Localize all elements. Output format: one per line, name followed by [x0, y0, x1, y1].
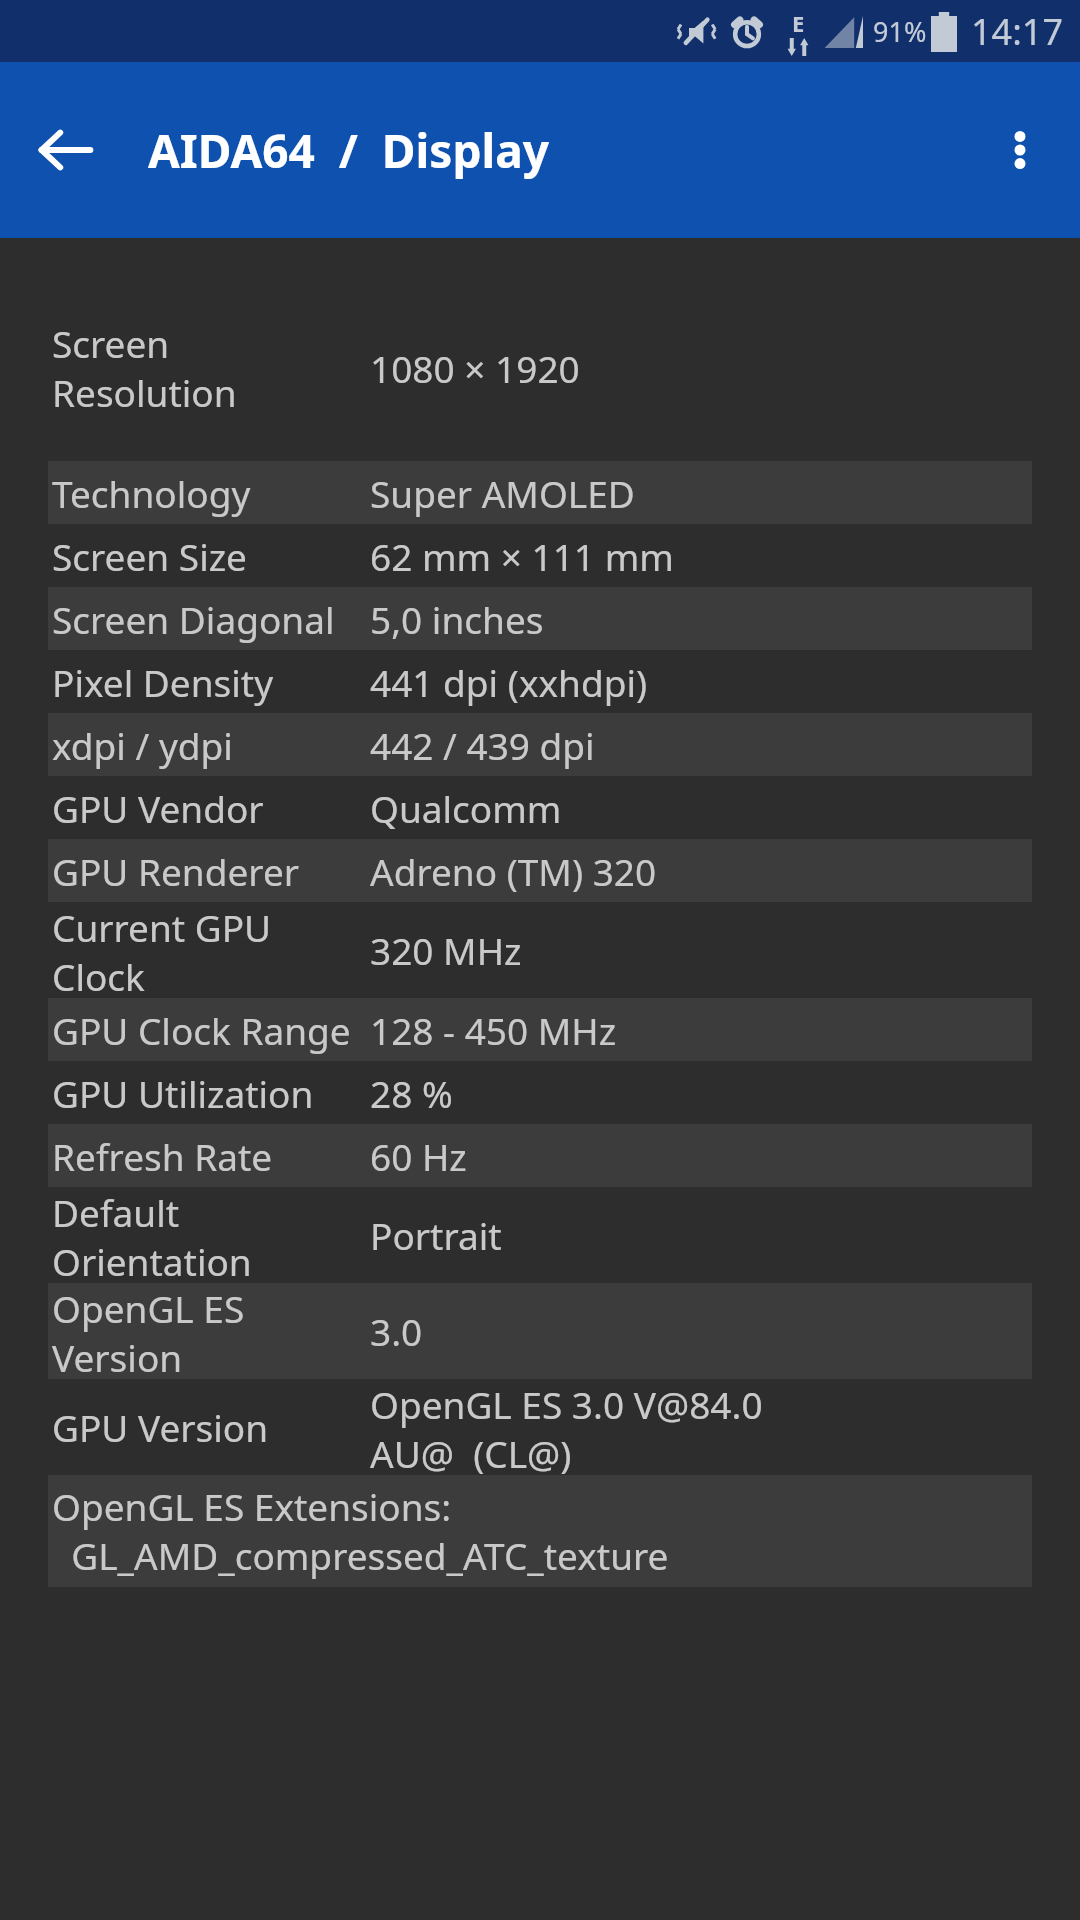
staticText: Portrait: [370, 1210, 502, 1260]
staticText: GPU Utilization: [52, 1068, 370, 1118]
staticText: AIDA64 / Display: [148, 119, 549, 182]
button[interactable]: xdpi / ydpi: [48, 713, 1032, 776]
staticText: Qualcomm: [370, 783, 562, 833]
staticText: OpenGL ES Version: [52, 1283, 370, 1379]
staticText: Screen Resolution: [52, 318, 370, 418]
button[interactable]: GPU Renderer: [48, 839, 1032, 902]
staticText: Default Orientation: [52, 1187, 370, 1283]
staticText: xdpi / ydpi: [52, 720, 370, 770]
button[interactable]: OpenGL ES Extensions: GL_AMD_compressed_…: [48, 1475, 1032, 1587]
button[interactable]: Default Orientation: [48, 1187, 1032, 1283]
button[interactable]: Refresh Rate: [48, 1124, 1032, 1187]
button[interactable]: OpenGL ES Version: [48, 1283, 1032, 1379]
staticText: 442 / 439 dpi: [370, 720, 595, 770]
staticText: Technology: [52, 468, 370, 518]
button[interactable]: GPU Utilization: [48, 1061, 1032, 1124]
button[interactable]: More options: [980, 110, 1060, 190]
staticText: 320 MHz: [370, 925, 522, 975]
staticText: 441 dpi (xxhdpi): [370, 657, 648, 707]
button[interactable]: Technology: [48, 461, 1032, 524]
button[interactable]: GPU Vendor: [48, 776, 1032, 839]
staticText: Screen Size: [52, 531, 370, 581]
staticText: 91%: [873, 13, 927, 50]
staticText: Screen Diagonal: [52, 594, 370, 644]
staticText: Pixel Density: [52, 657, 370, 707]
staticText: OpenGL ES Extensions: GL_AMD_compressed_…: [52, 1481, 669, 1581]
staticText: E: [792, 8, 805, 38]
button[interactable]: Screen Size: [48, 524, 1032, 587]
button[interactable]: Pixel Density: [48, 650, 1032, 713]
staticText: GPU Version: [52, 1402, 370, 1452]
staticText: 1080 × 1920: [370, 343, 580, 393]
button[interactable]: GPU Clock Range: [48, 998, 1032, 1061]
staticText: GPU Renderer: [52, 846, 370, 896]
staticText: 28 %: [370, 1068, 453, 1118]
staticText: GPU Vendor: [52, 783, 370, 833]
staticText: 5,0 inches: [370, 594, 544, 644]
button[interactable]: GPU Version: [48, 1379, 1032, 1475]
staticText: 14:17: [971, 7, 1064, 56]
staticText: 128 - 450 MHz: [370, 1005, 617, 1055]
button[interactable]: Current GPU Clock: [48, 902, 1032, 998]
button[interactable]: Back: [30, 114, 102, 186]
staticText: OpenGL ES 3.0 V@84.0 AU@ (CL@): [370, 1379, 763, 1475]
staticText: GPU Clock Range: [52, 1005, 370, 1055]
staticText: Refresh Rate: [52, 1131, 370, 1181]
button[interactable]: Screen Diagonal: [48, 587, 1032, 650]
staticText: 62 mm × 111 mm: [370, 531, 674, 581]
staticText: 60 Hz: [370, 1131, 467, 1181]
staticText: Current GPU Clock: [52, 902, 370, 998]
staticText: Super AMOLED: [370, 468, 635, 518]
button[interactable]: Screen Resolution: [48, 274, 1032, 461]
staticText: 3.0: [370, 1306, 423, 1356]
staticText: Adreno (TM) 320: [370, 846, 657, 896]
